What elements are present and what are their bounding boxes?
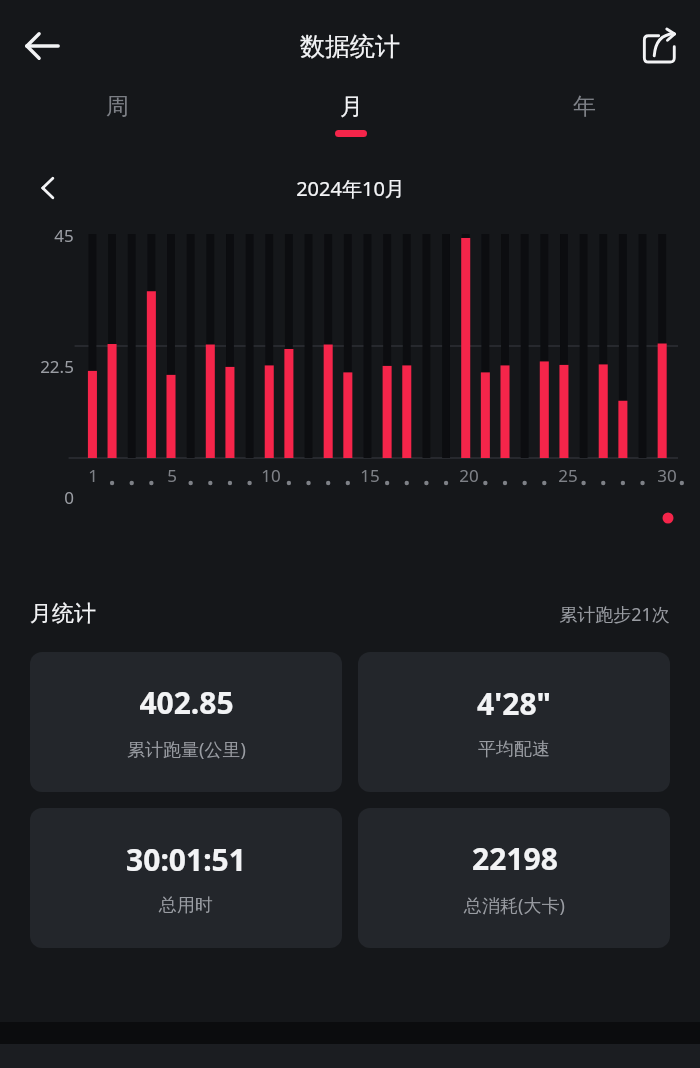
staticText: 10 — [261, 464, 281, 487]
staticText: 5 — [167, 464, 177, 487]
button[interactable]: 4'28" — [358, 652, 670, 792]
staticText: 总用时 — [159, 894, 213, 917]
staticText: 1 — [88, 464, 98, 487]
staticText: 15 — [360, 464, 380, 487]
staticText: 30 — [657, 464, 677, 487]
staticText: 402.85 — [139, 682, 234, 723]
button[interactable]: 22198 — [358, 808, 670, 948]
button[interactable]: 年 — [467, 92, 700, 137]
staticText: 总消耗(大卡) — [464, 893, 565, 918]
staticText: 累计跑量(公里) — [127, 737, 246, 762]
staticText: 月统计 — [30, 600, 96, 628]
button[interactable]: 周 — [0, 92, 234, 137]
staticText: 累计跑步21次 — [559, 602, 670, 627]
button[interactable]: 402.85 — [30, 652, 342, 792]
staticText: 22.5 — [40, 355, 74, 378]
staticText: 平均配速 — [478, 738, 550, 761]
button[interactable]: 月 — [234, 92, 467, 137]
button[interactable]: 30:01:51 — [30, 808, 342, 948]
staticText: 数据统计 — [300, 31, 400, 62]
staticText: 年 — [573, 92, 596, 121]
staticText: 月 — [340, 92, 363, 121]
staticText: 20 — [459, 464, 479, 487]
staticText: 0 — [64, 486, 74, 509]
button[interactable]: Back — [14, 18, 70, 74]
staticText: 2024年10月 — [296, 175, 405, 202]
staticText: 22198 — [472, 838, 558, 879]
staticText: 45 — [54, 224, 74, 247]
staticText: 周 — [106, 92, 129, 121]
staticText: 30:01:51 — [126, 839, 246, 880]
staticText: 4'28" — [477, 683, 551, 724]
button[interactable]: Share — [632, 18, 688, 74]
staticText: 25 — [558, 464, 578, 487]
button[interactable]: Previous month — [24, 164, 72, 212]
